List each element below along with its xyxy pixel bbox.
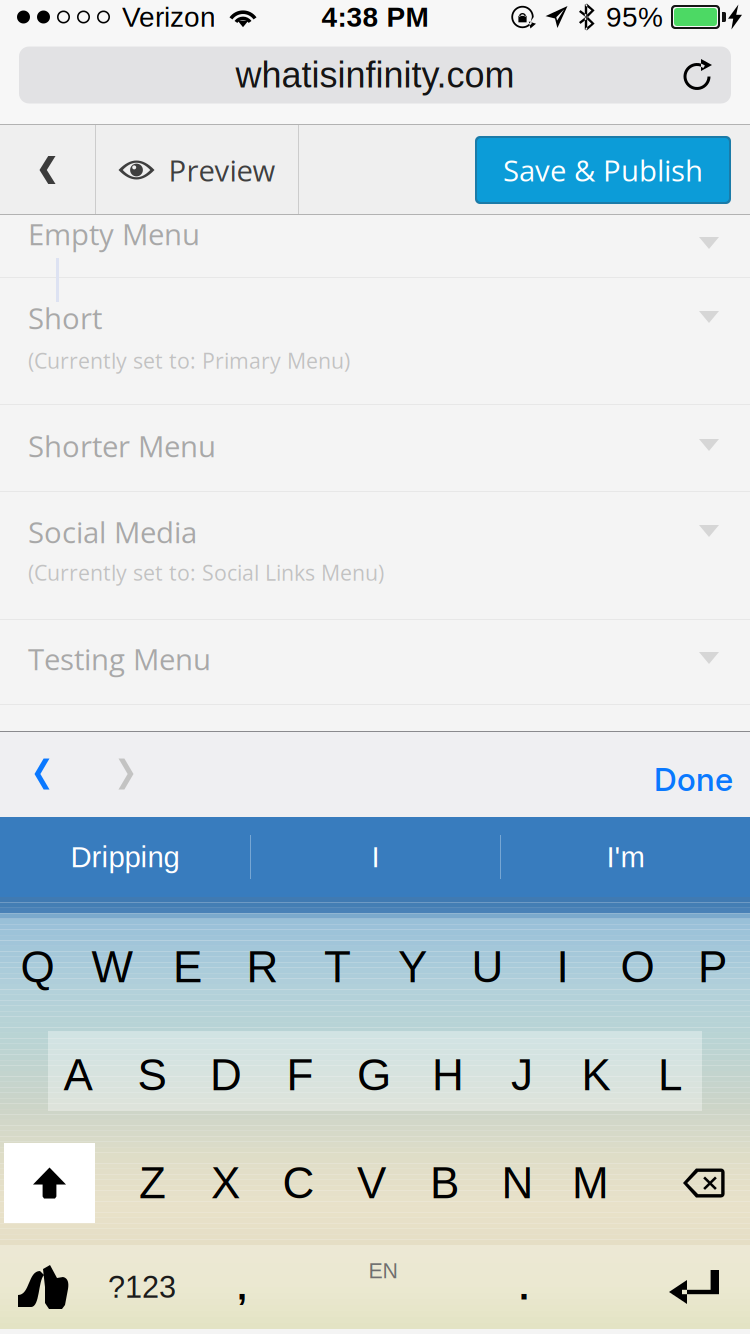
button[interactable]: M <box>554 1143 627 1223</box>
button[interactable]: F <box>263 1049 337 1101</box>
staticText: A <box>63 1050 92 1100</box>
staticText: EN <box>368 1259 397 1283</box>
staticText: T <box>324 942 351 992</box>
staticText: Z <box>139 1158 166 1208</box>
button[interactable]: C <box>262 1143 335 1223</box>
staticText: S <box>137 1050 166 1100</box>
staticText: Preview <box>168 150 275 190</box>
button[interactable]: H <box>411 1049 485 1101</box>
button[interactable]: R <box>225 941 300 993</box>
button[interactable]: Testing Menu <box>0 620 750 704</box>
button[interactable]: I <box>525 941 600 993</box>
button[interactable]: N <box>481 1143 554 1223</box>
staticText: J <box>511 1050 533 1100</box>
staticText: (Currently set to: Primary Menu) <box>28 346 350 375</box>
staticText: P <box>698 942 727 992</box>
staticText: N <box>501 1158 533 1208</box>
staticText: . <box>519 1267 529 1307</box>
button[interactable]: D <box>189 1049 263 1101</box>
staticText: W <box>91 942 133 992</box>
staticText: D <box>210 1050 242 1100</box>
button[interactable]: ?123 <box>88 1245 196 1329</box>
staticText: , <box>237 1267 247 1307</box>
staticText: F <box>286 1050 313 1100</box>
staticText: U <box>471 942 503 992</box>
button[interactable]: Done <box>614 731 750 817</box>
button[interactable]: J <box>485 1049 559 1101</box>
staticText: Testing Menu <box>28 639 211 679</box>
button[interactable]: O <box>600 941 675 993</box>
staticText: Verizon <box>122 1 216 33</box>
button[interactable]: . <box>478 1245 570 1329</box>
button[interactable]: Return <box>638 1245 750 1329</box>
staticText: Shorter Menu <box>28 426 216 466</box>
staticText: H <box>432 1050 464 1100</box>
button[interactable]: Dripping <box>0 817 250 897</box>
button[interactable]: S <box>115 1049 189 1101</box>
staticText: C <box>282 1158 314 1208</box>
staticText: Q <box>20 942 54 992</box>
button[interactable]: Z <box>116 1143 189 1223</box>
staticText: I <box>371 841 379 873</box>
staticText: K <box>581 1050 610 1100</box>
staticText: whatisinfinity.com <box>235 55 514 95</box>
button[interactable]: P <box>675 941 750 993</box>
staticText: ?123 <box>108 1270 176 1304</box>
staticText: Short <box>28 298 102 338</box>
staticText: B <box>430 1158 459 1208</box>
button[interactable]: whatisinfinity.com <box>19 46 731 103</box>
button[interactable]: G <box>337 1049 411 1101</box>
staticText: G <box>357 1050 391 1100</box>
staticText: (Currently set to: Social Links Menu) <box>28 558 384 587</box>
button[interactable]: K <box>559 1049 633 1101</box>
button[interactable]: I'm <box>501 817 750 897</box>
staticText: X <box>211 1158 240 1208</box>
staticText: I'm <box>606 841 644 873</box>
button[interactable]: A <box>41 1049 115 1101</box>
button[interactable]: Social Media <box>0 492 750 619</box>
staticText: R <box>246 942 278 992</box>
staticText: V <box>357 1158 386 1208</box>
staticText: Y <box>398 942 427 992</box>
button[interactable]: I <box>251 817 500 897</box>
button[interactable]: Save & Publish <box>475 136 731 204</box>
button[interactable]: Y <box>375 941 450 993</box>
button[interactable]: L <box>633 1049 707 1101</box>
button[interactable]: Switch keyboard <box>0 1245 88 1329</box>
button[interactable]: T <box>300 941 375 993</box>
button[interactable]: Empty Menu <box>0 215 750 277</box>
staticText: 95% <box>606 1 663 33</box>
staticText: Social Media <box>28 512 197 552</box>
staticText: Save & Publish <box>503 150 703 190</box>
staticText: Empty Menu <box>28 214 200 254</box>
button[interactable]: Previous field <box>0 731 84 817</box>
staticText: I <box>556 942 568 992</box>
button[interactable]: EN <box>288 1245 478 1329</box>
staticText: Done <box>654 760 733 799</box>
button[interactable]: Delete <box>658 1143 750 1223</box>
button[interactable]: , <box>196 1245 288 1329</box>
button[interactable]: W <box>75 941 150 993</box>
button[interactable]: Next field <box>84 731 168 817</box>
button[interactable]: X <box>189 1143 262 1223</box>
staticText: L <box>658 1050 682 1100</box>
button[interactable]: V <box>335 1143 408 1223</box>
button[interactable]: B <box>408 1143 481 1223</box>
button[interactable]: Shift <box>4 1143 95 1223</box>
staticText: M <box>572 1158 609 1208</box>
staticText: O <box>620 942 654 992</box>
staticText: Dripping <box>70 841 179 873</box>
button[interactable]: E <box>150 941 225 993</box>
button[interactable]: Preview <box>96 125 298 215</box>
button[interactable]: Q <box>0 941 75 993</box>
button[interactable]: Shorter Menu <box>0 405 750 491</box>
staticText: E <box>173 942 202 992</box>
staticText: 4:38 PM <box>321 1 428 33</box>
button[interactable]: Short <box>0 278 750 404</box>
button[interactable]: U <box>450 941 525 993</box>
button[interactable]: Back <box>0 125 95 215</box>
